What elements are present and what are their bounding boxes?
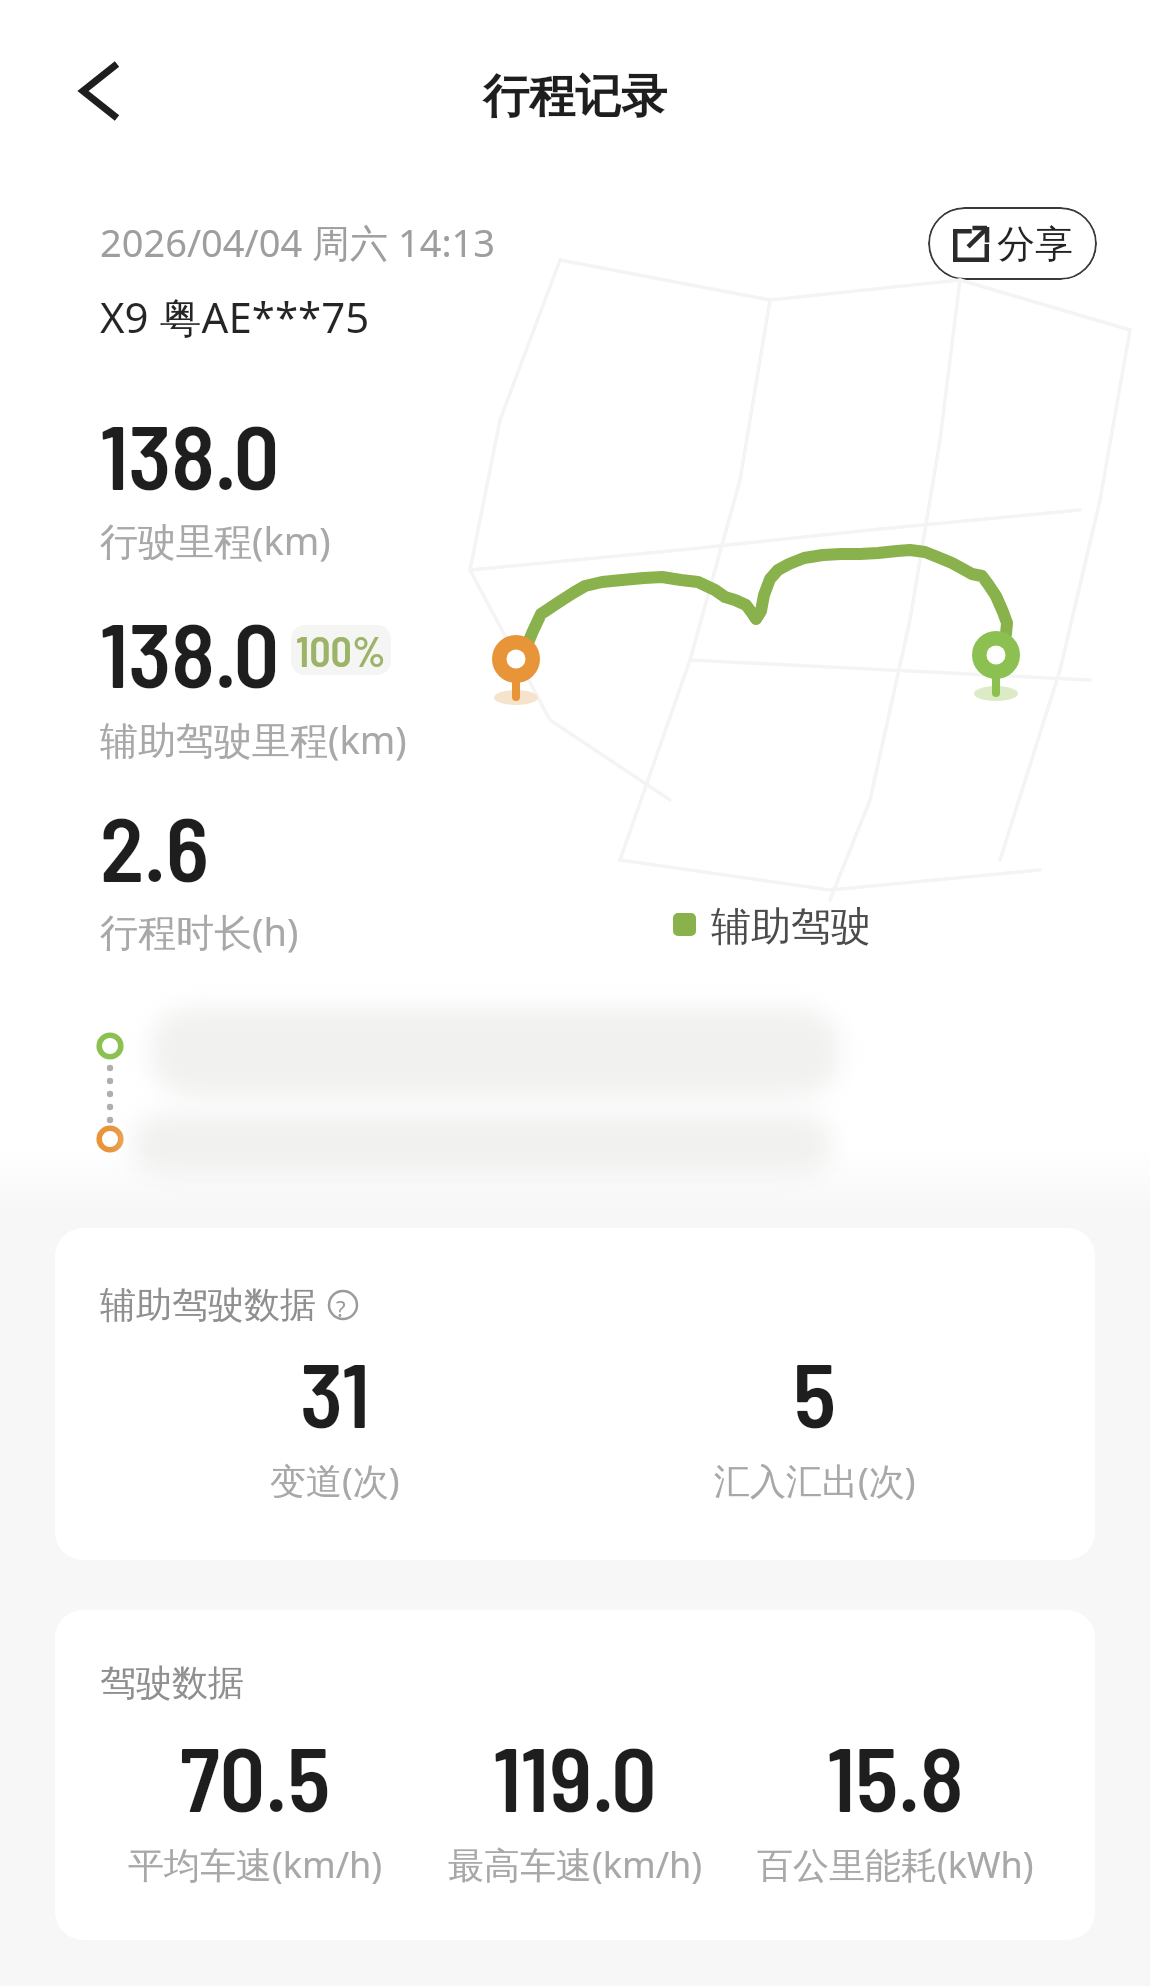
staticText: 138.0 [100, 400, 280, 508]
staticText: 138.0 [100, 598, 280, 706]
staticText: 100% [296, 625, 386, 675]
staticText: 31 [300, 1338, 370, 1446]
staticText: 2.6 [100, 792, 209, 900]
button[interactable] [60, 55, 136, 131]
staticText: 驾驶数据 [100, 1660, 244, 1705]
staticText: 行程时长(h) [100, 905, 299, 957]
staticText: 平均车速(km/h) [128, 1840, 383, 1889]
staticText: X9 粤AE***75 [100, 288, 370, 345]
staticText: 行程记录 [483, 68, 667, 126]
staticText: 辅助驾驶数据 [100, 1282, 316, 1327]
staticText: 5 [793, 1338, 837, 1446]
staticText: 汇入汇出(次) [714, 1456, 916, 1505]
staticText: 15.8 [827, 1722, 964, 1830]
staticText: ? [336, 1293, 346, 1323]
staticText: 行驶里程(km) [100, 514, 331, 566]
staticText: 70.5 [180, 1722, 331, 1830]
staticText: 2026/04/04 周六 14:13 [100, 216, 496, 268]
staticText: 分享 [997, 220, 1073, 268]
staticText: 119.0 [493, 1722, 657, 1830]
staticText: 辅助驾驶里程(km) [100, 713, 407, 765]
staticText: 辅助驾驶 [711, 901, 871, 951]
button[interactable]: 分享 [928, 207, 1097, 280]
staticText: 最高车速(km/h) [448, 1840, 703, 1889]
staticText: 百公里能耗(kWh) [757, 1840, 1034, 1889]
staticText: 变道(次) [270, 1456, 400, 1505]
